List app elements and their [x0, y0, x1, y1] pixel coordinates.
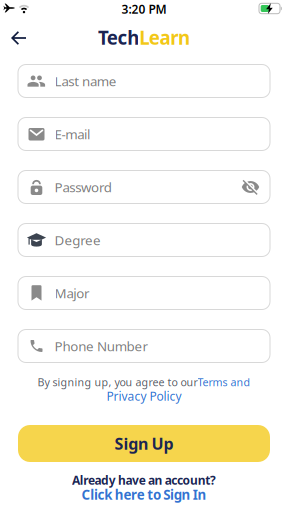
button[interactable]: Last name — [18, 64, 270, 97]
staticText: By signing up, you agree to our — [37, 375, 197, 389]
staticText: Click here to Sign In — [81, 486, 206, 503]
button[interactable] — [11, 31, 27, 45]
button[interactable]: Password — [18, 170, 270, 203]
staticText: Major — [54, 284, 90, 302]
staticText: Phone Number — [54, 337, 148, 355]
button[interactable] — [241, 177, 260, 196]
button[interactable]: Degree — [18, 223, 270, 256]
button[interactable]: E-mail — [18, 117, 270, 150]
button[interactable]: Privacy Policy — [106, 388, 181, 404]
staticText: Privacy Policy — [106, 388, 181, 404]
staticText: Sign Up — [115, 433, 173, 454]
staticText: 3:20 PM — [121, 1, 166, 17]
button[interactable]: Major — [18, 276, 270, 309]
staticText: Terms and — [197, 375, 250, 389]
button[interactable]: Sign Up — [18, 425, 270, 462]
button[interactable]: Phone Number — [18, 329, 270, 362]
staticText: Tech — [98, 25, 139, 50]
staticText: E-mail — [54, 125, 90, 143]
staticText: Degree — [54, 231, 101, 249]
button[interactable]: Click here to Sign In — [81, 486, 206, 503]
staticText: Already have an account? — [72, 472, 216, 488]
staticText: Learn — [139, 25, 190, 50]
staticText: Last name — [54, 72, 117, 90]
staticText: Password — [54, 178, 112, 196]
